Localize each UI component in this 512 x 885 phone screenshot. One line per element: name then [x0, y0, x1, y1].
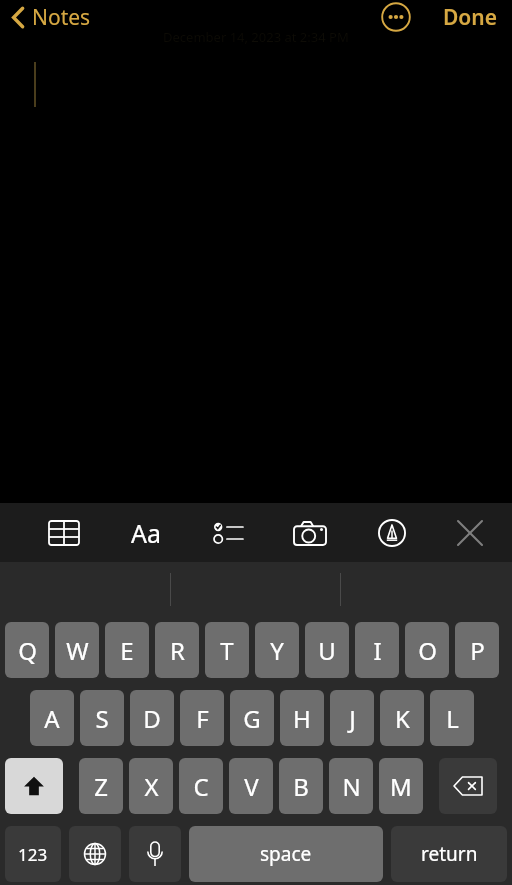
button[interactable]: G: [230, 690, 274, 746]
button[interactable]: Backspace: [439, 758, 497, 814]
button[interactable]: K: [380, 690, 424, 746]
button[interactable]: Notes: [0, 0, 103, 36]
staticText: S: [95, 702, 109, 735]
staticText: 123: [18, 843, 48, 866]
button[interactable]: Done: [429, 0, 512, 38]
staticText: Q: [18, 634, 37, 667]
staticText: O: [418, 634, 437, 667]
button[interactable]: Camera: [288, 511, 332, 555]
staticText: G: [243, 702, 261, 735]
button[interactable]: O: [405, 622, 449, 678]
button[interactable]: Z: [79, 758, 123, 814]
staticText: F: [196, 702, 209, 735]
button[interactable]: M: [379, 758, 423, 814]
button[interactable]: Table: [42, 511, 86, 555]
staticText: H: [293, 702, 311, 735]
staticText: E: [120, 634, 134, 667]
button[interactable]: Q: [5, 622, 49, 678]
button[interactable]: Close keyboard: [448, 511, 492, 555]
button[interactable]: H: [280, 690, 324, 746]
button[interactable]: V: [229, 758, 273, 814]
staticText: L: [446, 702, 459, 735]
staticText: R: [170, 634, 185, 667]
staticText: Done: [443, 3, 498, 32]
staticText: Z: [94, 770, 108, 803]
button[interactable]: X: [129, 758, 173, 814]
staticText: P: [470, 634, 485, 667]
staticText: U: [318, 634, 336, 667]
button[interactable]: L: [430, 690, 474, 746]
button[interactable]: Checklist: [206, 511, 250, 555]
staticText: return: [421, 841, 478, 867]
staticText: J: [349, 702, 356, 735]
button[interactable]: Dictate: [129, 826, 181, 882]
button[interactable]: F: [180, 690, 224, 746]
staticText: December 14, 2023 at 2:34 PM: [163, 28, 349, 46]
staticText: N: [342, 770, 361, 803]
staticText: K: [395, 702, 410, 735]
button[interactable]: U: [305, 622, 349, 678]
button[interactable]: N: [329, 758, 373, 814]
button[interactable]: Change keyboard language: [69, 826, 121, 882]
staticText: W: [66, 634, 89, 667]
staticText: A: [44, 702, 60, 735]
button[interactable]: A: [30, 690, 74, 746]
button[interactable]: S: [80, 690, 124, 746]
button[interactable]: Text format: [124, 511, 168, 555]
button[interactable]: P: [455, 622, 499, 678]
staticText: space: [260, 841, 312, 867]
staticText: D: [143, 702, 161, 735]
staticText: V: [244, 770, 259, 803]
staticText: T: [220, 634, 234, 667]
staticText: Notes: [32, 3, 91, 32]
staticText: M: [390, 770, 412, 803]
button[interactable]: W: [55, 622, 99, 678]
button[interactable]: Markup: [370, 511, 414, 555]
staticText: C: [193, 770, 209, 803]
staticText: Aa: [131, 516, 162, 550]
button[interactable]: E: [105, 622, 149, 678]
button[interactable]: R: [155, 622, 199, 678]
button[interactable]: T: [205, 622, 249, 678]
staticText: B: [293, 770, 309, 803]
staticText: I: [373, 634, 382, 667]
button[interactable]: Shift: [5, 758, 63, 814]
button[interactable]: C: [179, 758, 223, 814]
staticText: X: [144, 770, 159, 803]
button[interactable]: return: [391, 826, 507, 882]
button[interactable]: space: [189, 826, 383, 882]
button[interactable]: 123: [5, 826, 61, 882]
staticText: Y: [270, 634, 284, 667]
button[interactable]: B: [279, 758, 323, 814]
button[interactable]: I: [355, 622, 399, 678]
button[interactable]: Y: [255, 622, 299, 678]
button[interactable]: D: [130, 690, 174, 746]
button[interactable]: More options: [373, 0, 419, 40]
button[interactable]: J: [330, 690, 374, 746]
